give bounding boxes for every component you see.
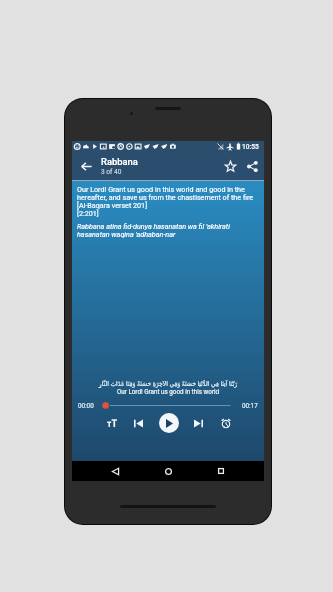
button[interactable]: Navigate up	[72, 152, 100, 180]
button[interactable]: Text size	[101, 413, 123, 433]
button[interactable]: Set alarm	[215, 413, 237, 433]
button[interactable]: Home	[158, 461, 178, 481]
button[interactable]: Favorite	[219, 152, 241, 180]
button[interactable]: Next	[187, 413, 209, 433]
staticText: Our Lord! Grant us good in this world an…	[77, 185, 259, 209]
staticText: Our Lord! Grant us good in this world	[72, 388, 264, 395]
staticText: 3 of 40	[101, 168, 122, 176]
button[interactable]: Previous	[127, 413, 149, 433]
staticText: 00:17	[242, 402, 258, 409]
button[interactable]: Recent apps	[211, 461, 231, 481]
staticText: Rabbana	[101, 156, 138, 167]
staticText: رَبَّنَا آتِنَا فِي الدُّنْيَا حَسَنَةً …	[72, 380, 264, 388]
button[interactable]: Play	[159, 413, 179, 433]
staticText: 00:00	[78, 402, 94, 409]
staticText: Rabbana atina fid-dunya hasanatan wa fil…	[77, 222, 259, 238]
staticText: [2:201]	[77, 209, 99, 217]
button[interactable]: Share	[241, 152, 264, 180]
staticText: 10:55	[242, 143, 259, 151]
button[interactable]: Back	[105, 461, 125, 481]
